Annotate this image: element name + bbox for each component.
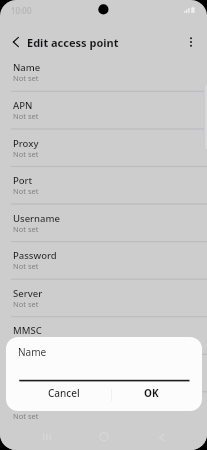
staticText: Not set — [13, 374, 39, 384]
staticText: Edit access point — [27, 35, 119, 50]
button[interactable]: More options — [180, 31, 202, 53]
staticText: Not set — [13, 411, 39, 421]
staticText: Server — [13, 287, 43, 300]
button[interactable]: MMSC — [0, 316, 207, 354]
staticText: Not set — [13, 224, 39, 234]
button[interactable]: APN — [0, 91, 207, 129]
staticText: OK — [144, 386, 159, 400]
button[interactable]: Name — [0, 53, 207, 91]
staticText: Cancel — [48, 386, 80, 400]
staticText: Not set — [13, 186, 39, 196]
staticText: Name — [18, 345, 47, 359]
staticText: Not set — [13, 149, 39, 159]
staticText: Not set — [13, 73, 39, 83]
button[interactable]: MMS port — [0, 391, 207, 429]
staticText: 10:00 — [11, 5, 32, 16]
button[interactable]: MCC — [0, 429, 207, 450]
button[interactable]: Proxy — [0, 129, 207, 167]
staticText: Username — [13, 212, 60, 225]
staticText: MMS port — [13, 399, 58, 412]
staticText: Proxy — [13, 137, 39, 150]
button[interactable]: Navigate up — [4, 31, 26, 53]
button[interactable]: OK — [104, 379, 202, 407]
staticText: MMSC — [13, 324, 42, 337]
button[interactable]: Cancel — [6, 379, 104, 407]
staticText: APN — [13, 99, 33, 112]
staticText: Not set — [13, 261, 39, 271]
staticText: Not set — [13, 111, 39, 121]
staticText: Port — [13, 174, 33, 187]
staticText: Not set — [13, 336, 39, 346]
button[interactable]: Port — [0, 166, 207, 204]
button[interactable]: Username — [0, 204, 207, 242]
button[interactable]: Server — [0, 279, 207, 317]
staticText: Not set — [13, 299, 39, 309]
staticText: Password — [13, 249, 57, 262]
staticText: Name — [13, 61, 41, 74]
button[interactable]: Password — [0, 241, 207, 279]
button[interactable]: MMS proxy — [0, 354, 207, 392]
